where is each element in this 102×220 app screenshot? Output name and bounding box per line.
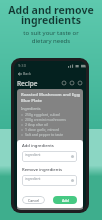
staticText: ingredient	[25, 177, 41, 181]
staticText: Roasted Mushroom and Eggplant	[21, 92, 80, 98]
staticText: 9:30	[18, 63, 26, 68]
button[interactable]: More options	[76, 79, 84, 87]
button[interactable]: Add	[53, 196, 77, 204]
button[interactable]: ingredient	[22, 175, 77, 186]
staticText: 1 clove garlic, minced	[25, 127, 60, 132]
staticText: 2 tbsp olive oil	[25, 122, 48, 127]
staticText: 200g cremini mushrooms	[25, 117, 66, 122]
button[interactable]: ingredient	[22, 151, 77, 162]
staticText: Remove ingredients	[22, 167, 63, 173]
staticText: Cancel	[28, 198, 40, 203]
staticText: Recipe	[17, 79, 38, 88]
staticText: to suit your taste or dietary needs	[23, 29, 79, 45]
staticText: Add	[62, 198, 69, 203]
button[interactable]: Share	[60, 79, 68, 87]
staticText: Back	[23, 71, 31, 76]
staticText: Add ingredients	[22, 143, 54, 149]
button[interactable]: Back	[16, 70, 23, 77]
staticText: ingredient	[25, 153, 41, 157]
staticText: Add and remove ingredients	[8, 3, 94, 27]
button[interactable]: Cancel	[22, 196, 45, 204]
staticText: Salt and pepper to taste	[25, 132, 64, 137]
staticText: Ingredients	[21, 106, 41, 111]
button[interactable]: Bookmark	[68, 79, 76, 87]
staticText: Blue Plate	[21, 98, 43, 104]
staticText: 250g eggplant, cubed	[25, 112, 60, 117]
